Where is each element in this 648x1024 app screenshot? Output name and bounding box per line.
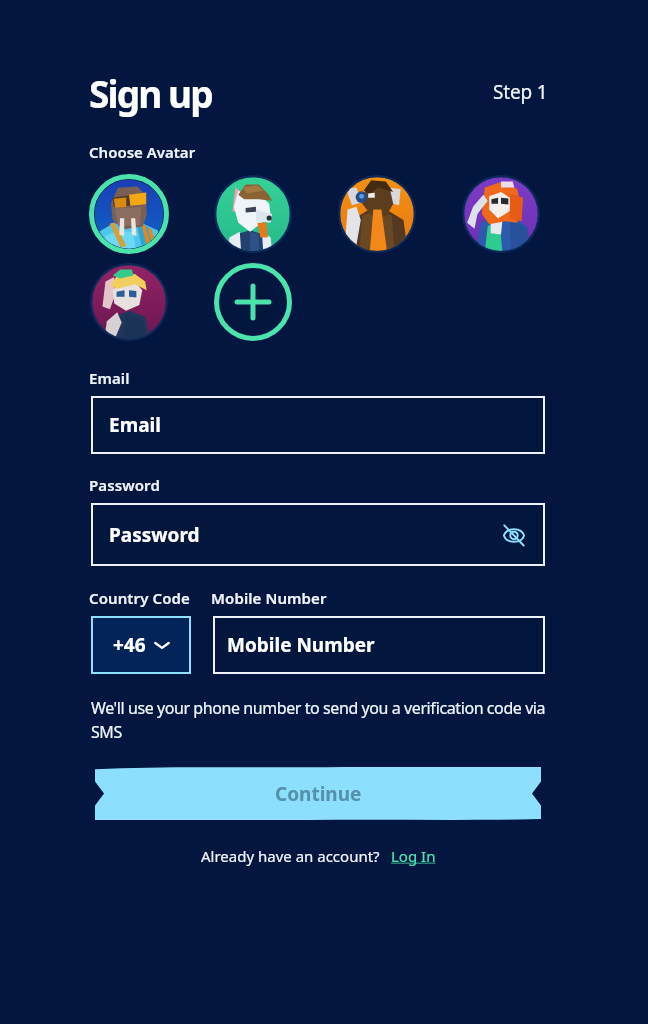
button[interactable]: Show password xyxy=(503,524,525,546)
staticText: Step 1 xyxy=(493,79,548,105)
staticText: Log In xyxy=(391,846,436,866)
button[interactable]: +46 xyxy=(91,616,191,674)
staticText: Mobile Number xyxy=(227,632,375,658)
staticText: We'll use your phone number to send you … xyxy=(91,697,551,743)
staticText: Sign up xyxy=(89,68,212,118)
button[interactable]: Add avatar xyxy=(213,262,293,342)
button[interactable]: Log In xyxy=(391,846,436,866)
staticText: Already have an account? xyxy=(201,846,380,866)
staticText: Mobile Number xyxy=(211,588,327,608)
staticText: +46 xyxy=(113,632,146,658)
button[interactable]: Email xyxy=(91,396,545,454)
button[interactable]: Avatar 3 xyxy=(337,174,417,254)
button[interactable]: Avatar 2 xyxy=(213,174,293,254)
button[interactable]: Avatar 1 xyxy=(89,174,169,254)
button[interactable]: Avatar 4 xyxy=(461,174,541,254)
staticText: Email xyxy=(109,412,161,438)
button[interactable]: Avatar 5 xyxy=(89,262,169,342)
staticText: Password xyxy=(109,522,200,548)
button[interactable]: Mobile Number xyxy=(213,616,545,674)
button[interactable]: Continue xyxy=(95,767,541,820)
staticText: Password xyxy=(89,475,160,495)
staticText: Choose Avatar xyxy=(89,142,196,162)
staticText: Country Code xyxy=(89,588,190,608)
staticText: Email xyxy=(89,368,130,388)
button[interactable]: Password xyxy=(91,503,545,566)
staticText: Continue xyxy=(275,781,362,807)
